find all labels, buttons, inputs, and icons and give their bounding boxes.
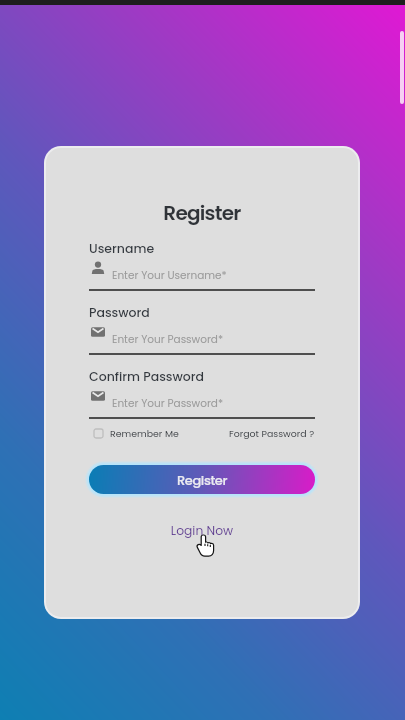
staticText: Password: [89, 304, 150, 321]
button[interactable]: Remember Me: [89, 427, 179, 440]
other: Pointer: [196, 534, 215, 557]
button[interactable]: Forgot Password ?: [229, 427, 315, 440]
staticText: Enter Your Username*: [112, 268, 227, 283]
staticText: Register: [44, 199, 360, 227]
button[interactable]: Login Now: [89, 522, 315, 539]
staticText: Register: [177, 471, 228, 489]
staticText: Username: [89, 240, 155, 257]
staticText: Confirm Password: [89, 368, 205, 385]
button[interactable]: Register: [89, 465, 315, 494]
staticText: Enter Your Password*: [112, 396, 224, 411]
staticText: Enter Your Password*: [112, 332, 224, 347]
staticText: Remember Me: [110, 427, 179, 440]
